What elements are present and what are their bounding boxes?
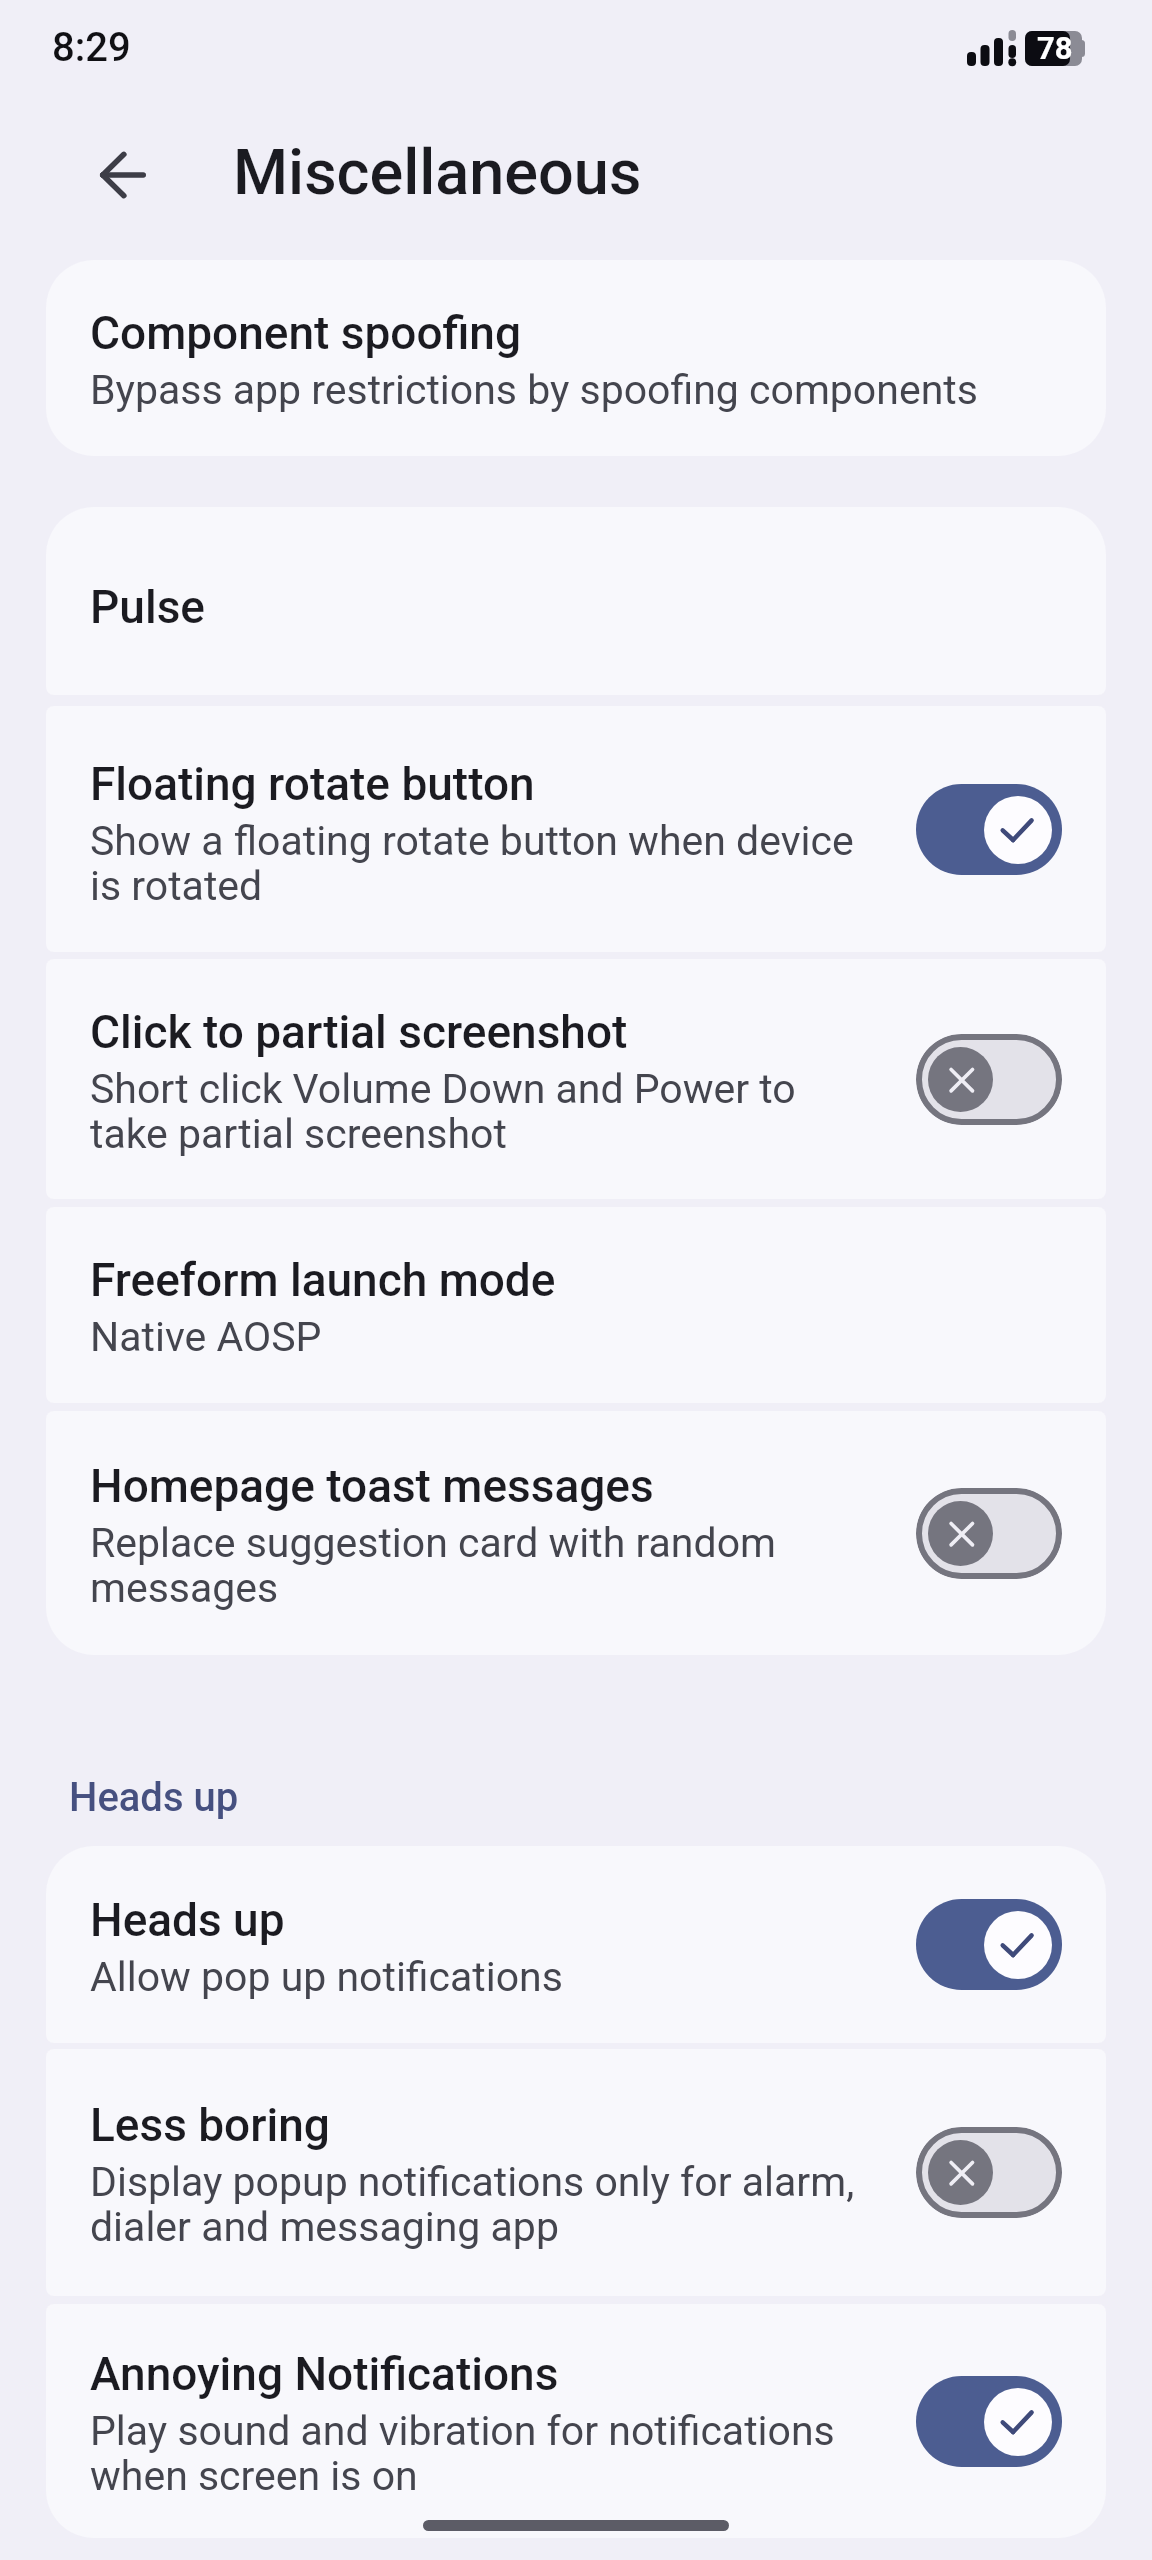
staticText: Play sound and vibration for notificatio…: [90, 2407, 835, 2500]
button[interactable]: Freeform launch mode: [46, 1207, 1106, 1403]
staticText: Replace suggestion card with random mess…: [90, 1519, 776, 1612]
button[interactable]: Click to partial screenshot: [46, 959, 1106, 1199]
button[interactable]: Floating rotate button: [46, 706, 1106, 952]
button[interactable]: Pulse: [46, 507, 1106, 695]
staticText: Floating rotate button: [90, 757, 535, 811]
staticText: Native AOSP: [90, 1313, 322, 1361]
staticText: Heads up: [90, 1893, 285, 1947]
button[interactable]: Component spoofing: [46, 260, 1106, 456]
button[interactable]: Heads up: [46, 1846, 1106, 2043]
staticText: Heads up: [69, 1774, 239, 1821]
staticText: Display popup notifications only for ala…: [90, 2158, 855, 2251]
staticText: Pulse: [90, 580, 205, 634]
button[interactable]: Less boring: [46, 2049, 1106, 2296]
staticText: Homepage toast messages: [90, 1459, 654, 1513]
staticText: Allow pop up notifications: [90, 1953, 563, 2001]
staticText: Click to partial screenshot: [90, 1005, 628, 1059]
staticText: Miscellaneous: [233, 136, 642, 210]
staticText: Component spoofing: [90, 306, 522, 360]
staticText: Bypass app restrictions by spoofing comp…: [90, 366, 978, 414]
button[interactable]: Homepage toast messages: [46, 1411, 1106, 1655]
staticText: Less boring: [90, 2098, 330, 2152]
button[interactable]: Back: [63, 115, 183, 235]
staticText: Short click Volume Down and Power to tak…: [90, 1065, 796, 1158]
staticText: 8:29: [52, 24, 131, 71]
staticText: Annoying Notifications: [90, 2347, 559, 2401]
button[interactable]: Annoying Notifications: [46, 2304, 1106, 2538]
staticText: Freeform launch mode: [90, 1253, 556, 1307]
staticText: 78: [1037, 30, 1073, 65]
staticText: Show a floating rotate button when devic…: [90, 817, 854, 910]
